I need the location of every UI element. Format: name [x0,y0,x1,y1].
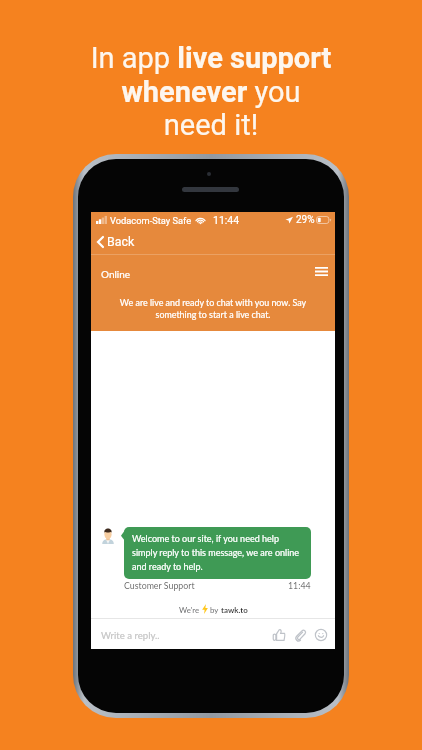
staticText: Write a reply.. [101,630,160,642]
button[interactable]: Like [270,625,287,642]
staticText: 11:44 [213,214,240,226]
button[interactable]: We're [179,604,248,614]
button[interactable]: Emoji [312,625,329,642]
button[interactable]: Back [91,228,335,255]
staticText: Back [107,234,135,249]
button[interactable]: Write a reply.. [91,618,270,649]
staticText: Online [101,268,131,280]
button[interactable]: Attach [291,625,308,642]
staticText: tawk.to [221,605,248,614]
staticText: We are live and ready to chat with you n… [91,297,335,320]
staticText: 29% [296,214,315,226]
staticText: Customer Support [124,580,195,591]
staticText: In app live support whenever you need it… [0,41,422,142]
staticText: Welcome to our site, if you need help si… [132,533,303,572]
staticText: 11:44 [288,580,311,591]
staticText: Vodacom-Stay Safe [110,215,192,226]
button[interactable]: Menu [308,258,334,284]
staticText: by [210,605,221,614]
staticText: We're [179,605,200,614]
